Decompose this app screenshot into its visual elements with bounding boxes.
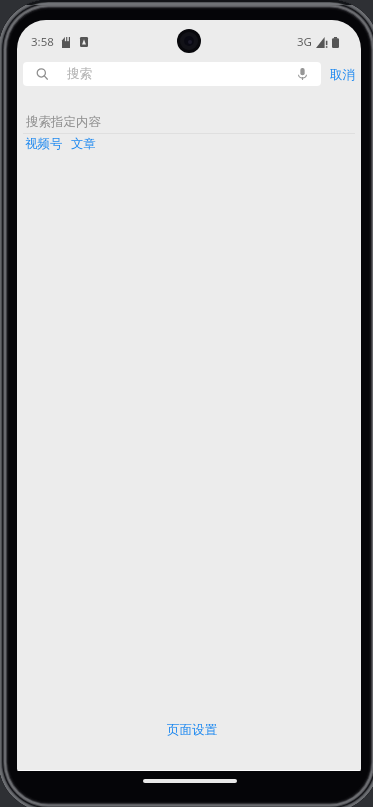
- staticText: 页面设置: [167, 722, 217, 738]
- button[interactable]: 页面设置: [163, 720, 221, 740]
- button[interactable]: 搜索: [23, 62, 321, 86]
- staticText: 搜索指定内容: [26, 114, 101, 130]
- button[interactable]: 取消: [326, 63, 359, 87]
- staticText: 搜索: [67, 66, 92, 82]
- staticText: 3G: [297, 34, 312, 50]
- button[interactable]: Voice search: [291, 62, 313, 86]
- staticText: 3:58: [31, 34, 54, 50]
- button[interactable]: 视频号: [24, 135, 64, 153]
- staticText: 文章: [71, 136, 96, 152]
- button[interactable]: 文章: [70, 135, 97, 153]
- staticText: 视频号: [25, 136, 63, 152]
- staticText: 取消: [330, 67, 355, 83]
